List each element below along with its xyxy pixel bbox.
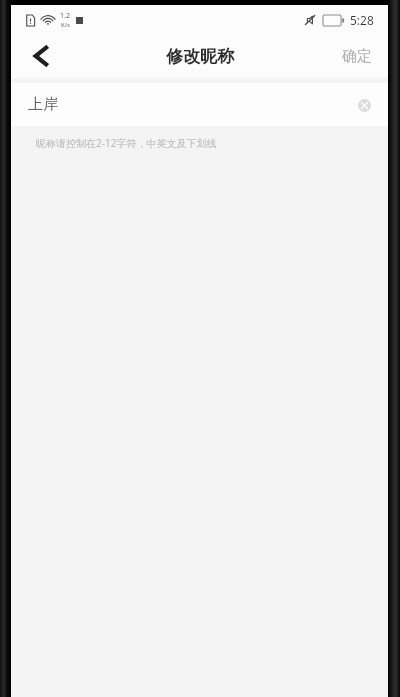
staticText: 1.2 — [60, 11, 70, 21]
button[interactable]: 上岸 — [11, 83, 388, 126]
staticText: 确定 — [342, 47, 372, 66]
button[interactable]: Clear — [353, 94, 375, 116]
button[interactable]: Back — [21, 35, 63, 77]
staticText: K/s — [61, 21, 70, 29]
staticText: 上岸 — [28, 95, 58, 114]
button[interactable]: 确定 — [326, 34, 388, 78]
staticText: 昵称请控制在2-12字符，中英文及下划线 — [36, 136, 217, 150]
staticText: 5:28 — [350, 12, 374, 28]
staticText: 修改昵称 — [166, 46, 234, 67]
